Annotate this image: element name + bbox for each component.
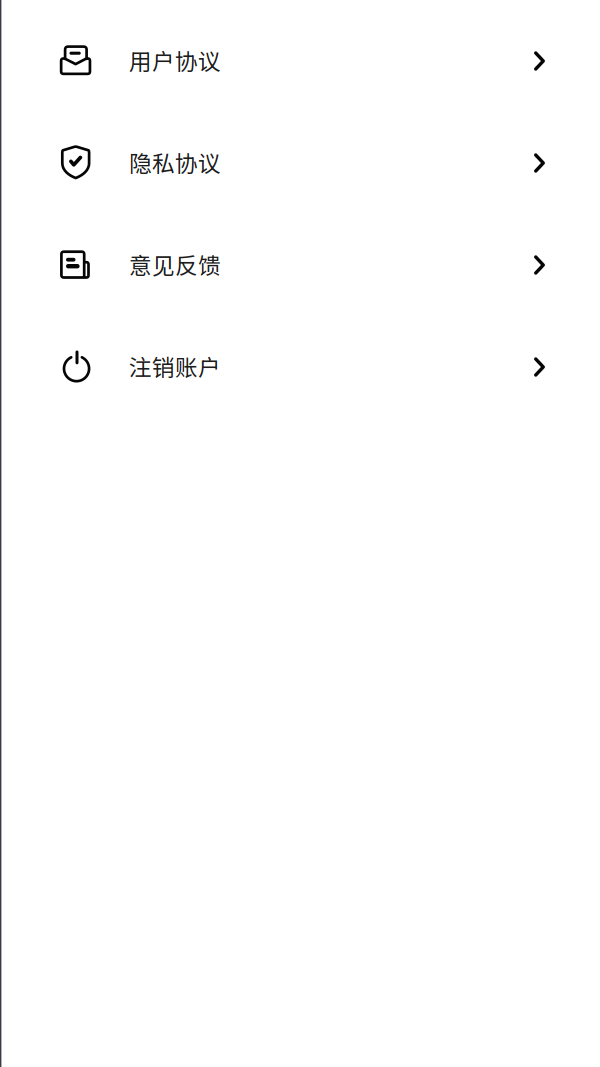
staticText: 隐私协议 [129,146,221,178]
button[interactable]: 意见反馈 [0,214,600,316]
button[interactable]: 隐私协议 [0,112,600,214]
staticText: 注销账户 [129,350,221,382]
button[interactable]: 用户协议 [0,10,600,112]
staticText: 用户协议 [129,44,221,76]
staticText: 意见反馈 [129,248,221,280]
button[interactable]: 注销账户 [0,316,600,418]
